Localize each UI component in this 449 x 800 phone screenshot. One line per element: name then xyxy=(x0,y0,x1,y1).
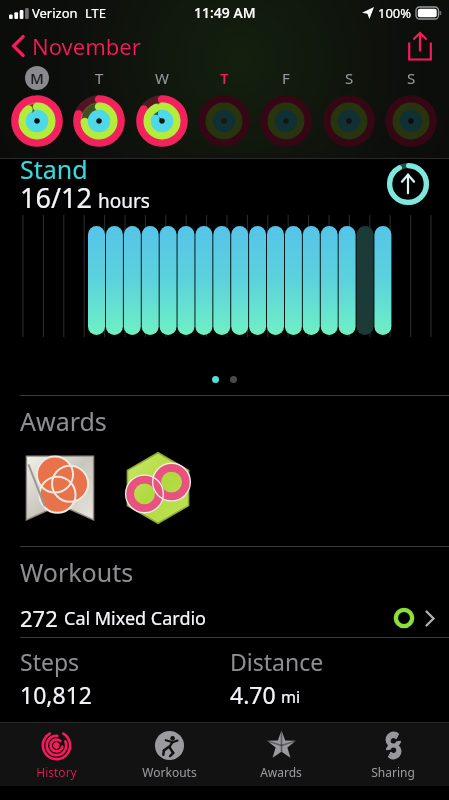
button[interactable]: History xyxy=(0,723,113,786)
button[interactable]: Awards xyxy=(225,723,337,786)
staticText: Cal Mixed Cardio xyxy=(64,606,206,631)
button[interactable]: Workouts xyxy=(113,723,225,786)
staticText: 11:49 AM xyxy=(194,3,256,22)
staticText: 272 xyxy=(20,603,58,633)
button[interactable]: Goal reached xyxy=(385,161,431,207)
button[interactable] xyxy=(212,376,219,383)
staticText: History xyxy=(36,764,77,780)
staticText: T xyxy=(95,68,104,88)
staticText: 4.70 xyxy=(230,679,276,710)
staticText: LTE xyxy=(85,4,107,22)
staticText: mi xyxy=(281,686,301,708)
staticText: Sharing xyxy=(371,764,415,780)
button[interactable]: Sharing xyxy=(337,723,449,786)
staticText: 16/12 xyxy=(20,179,92,216)
button[interactable]: S xyxy=(318,66,380,158)
button[interactable]: T xyxy=(68,66,130,158)
staticText: S xyxy=(407,68,416,88)
staticText: Stand xyxy=(20,152,88,186)
button[interactable]: Distance xyxy=(230,646,449,710)
staticText: W xyxy=(155,68,169,88)
staticText: Verizon xyxy=(32,4,78,22)
staticText: Workouts xyxy=(20,555,134,589)
staticText: hours xyxy=(98,188,150,214)
button[interactable]: Steps xyxy=(20,646,224,710)
button[interactable]: S xyxy=(380,66,442,158)
button[interactable]: November xyxy=(8,27,145,65)
button[interactable]: Perfect Month award xyxy=(18,446,102,530)
button[interactable]: Move Goal award xyxy=(116,446,200,530)
staticText: Awards xyxy=(20,404,107,438)
staticText: 10,812 xyxy=(20,679,92,710)
staticText: Workouts xyxy=(142,764,197,780)
staticText: S xyxy=(345,68,354,88)
staticText: 100% xyxy=(378,4,412,22)
button[interactable]: Share xyxy=(405,31,435,61)
staticText: Steps xyxy=(20,646,80,677)
button[interactable]: T xyxy=(193,66,255,158)
staticText: Awards xyxy=(260,764,302,780)
staticText: Distance xyxy=(230,646,324,677)
staticText: F xyxy=(282,68,290,88)
staticText: T xyxy=(220,68,229,88)
button[interactable]: W xyxy=(131,66,193,158)
button[interactable]: 272 xyxy=(0,595,449,641)
staticText: November xyxy=(32,31,141,61)
staticText: M xyxy=(30,68,44,88)
button[interactable]: F xyxy=(255,66,317,158)
button[interactable]: M xyxy=(6,66,68,158)
button[interactable] xyxy=(230,376,237,383)
